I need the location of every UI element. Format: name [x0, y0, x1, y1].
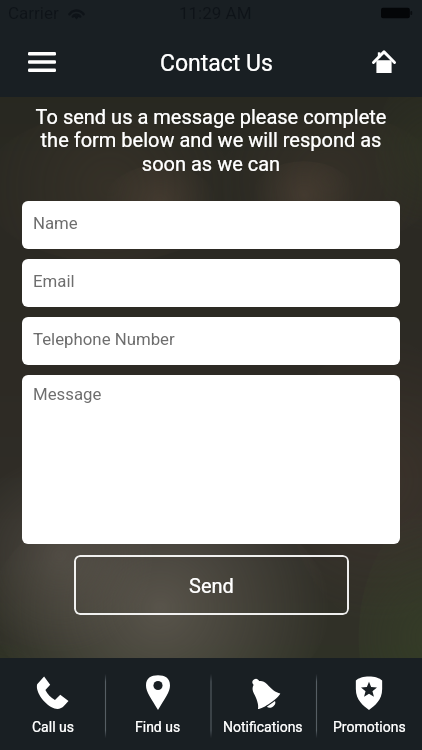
- button[interactable]: Message: [22, 375, 400, 544]
- staticText: Message: [33, 384, 102, 404]
- staticText: Promotions: [333, 719, 406, 735]
- staticText: Notifications: [223, 719, 303, 735]
- staticText: 11:29 AM: [179, 3, 252, 23]
- button[interactable]: Call us: [0, 658, 105, 750]
- button[interactable]: Email: [22, 259, 400, 307]
- button[interactable]: Promotions: [316, 658, 422, 750]
- staticText: Name: [33, 213, 78, 233]
- staticText: Find us: [135, 719, 181, 735]
- staticText: Send: [189, 574, 234, 597]
- staticText: Telephone Number: [33, 329, 175, 349]
- staticText: Contact Us: [160, 50, 273, 77]
- button[interactable]: Name: [22, 201, 400, 249]
- button[interactable]: Telephone Number: [22, 317, 400, 365]
- button[interactable]: Notifications: [210, 658, 316, 750]
- button[interactable]: Send: [74, 555, 349, 615]
- button[interactable]: Home: [346, 26, 422, 97]
- staticText: Email: [33, 271, 75, 291]
- button[interactable]: Menu: [0, 26, 84, 97]
- button[interactable]: Find us: [105, 658, 210, 750]
- staticText: To send us a message please complete the…: [30, 105, 392, 175]
- staticText: Carrier: [8, 3, 59, 23]
- staticText: Call us: [32, 719, 74, 735]
